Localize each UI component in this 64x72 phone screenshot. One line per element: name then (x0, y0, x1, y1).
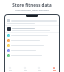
button[interactable] (5, 33, 59, 38)
button[interactable] (5, 48, 59, 53)
button[interactable]: Profile (51, 66, 57, 72)
button[interactable] (5, 43, 59, 48)
button[interactable]: Home (7, 66, 13, 72)
button[interactable]: Meals (36, 66, 42, 72)
button[interactable] (5, 38, 59, 43)
button[interactable] (5, 53, 59, 58)
button[interactable] (5, 26, 59, 32)
staticText: Track workouts, meals and more (0, 9, 64, 12)
staticText: Store fitness data (0, 2, 64, 8)
button[interactable]: Activity (22, 66, 28, 72)
